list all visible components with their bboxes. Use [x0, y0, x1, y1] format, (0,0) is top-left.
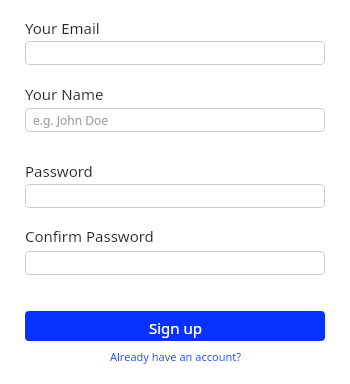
button[interactable]	[25, 184, 325, 208]
staticText: e.g. John Doe	[33, 112, 108, 128]
staticText: Sign up	[149, 318, 202, 338]
button[interactable]	[25, 251, 325, 275]
staticText: Your Name	[25, 84, 104, 104]
button[interactable]	[25, 41, 325, 65]
button[interactable]: Sign up	[25, 311, 325, 341]
button[interactable]: e.g. John Doe	[25, 108, 325, 132]
button[interactable]: Already have an account?	[110, 349, 241, 364]
staticText: Your Email	[25, 18, 100, 38]
staticText: Confirm Password	[25, 226, 154, 246]
staticText: Password	[25, 161, 93, 181]
